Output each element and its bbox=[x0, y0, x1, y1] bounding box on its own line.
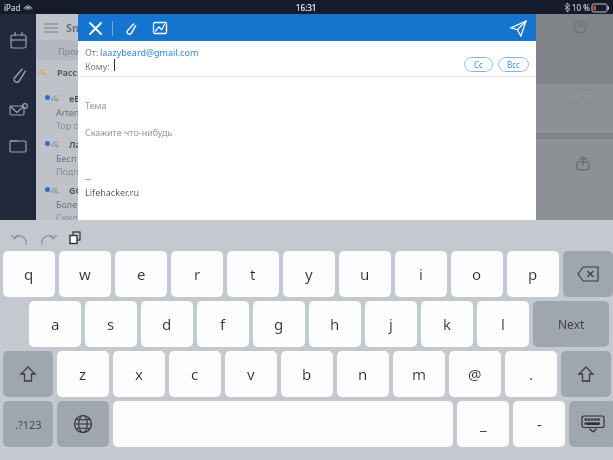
staticText: f bbox=[220, 314, 226, 334]
button[interactable]: Next bbox=[533, 301, 609, 347]
staticText: eB bbox=[69, 92, 81, 104]
staticText: c bbox=[191, 364, 199, 384]
button[interactable]: Hide keyboard bbox=[569, 401, 613, 447]
staticText: o bbox=[472, 264, 482, 284]
button[interactable]: k bbox=[421, 301, 473, 347]
staticText: iPad bbox=[4, 2, 21, 13]
staticText: Sm bbox=[66, 20, 83, 35]
button[interactable]: Close bbox=[84, 17, 106, 39]
staticText: l bbox=[501, 314, 505, 334]
staticText: GO bbox=[69, 184, 83, 196]
button[interactable]: .?123 bbox=[3, 401, 53, 447]
button[interactable]: n bbox=[337, 351, 389, 397]
staticText: a bbox=[51, 314, 60, 334]
staticText: t bbox=[250, 264, 256, 284]
button[interactable]: p bbox=[507, 251, 559, 297]
button[interactable]: GO bbox=[36, 182, 226, 226]
staticText: Бесп bbox=[56, 152, 77, 164]
button[interactable]: Insert photo bbox=[149, 17, 171, 39]
staticText: r bbox=[194, 264, 201, 284]
staticText: x bbox=[135, 364, 143, 384]
staticText: Тема bbox=[85, 99, 107, 111]
button[interactable]: Redo bbox=[38, 228, 58, 248]
button[interactable]: Shift bbox=[3, 351, 53, 397]
button[interactable]: Cc bbox=[464, 57, 493, 72]
staticText: От: bbox=[85, 46, 99, 58]
button[interactable]: Folders bbox=[10, 138, 27, 155]
button[interactable]: Backspace bbox=[563, 251, 613, 297]
button[interactable]: w bbox=[59, 251, 111, 297]
button[interactable]: Menu bbox=[44, 20, 58, 34]
button[interactable]: l bbox=[477, 301, 529, 347]
button[interactable]: Change keyboard bbox=[57, 401, 109, 447]
button[interactable]: t bbox=[227, 251, 279, 297]
button[interactable]: Paste bbox=[66, 228, 86, 248]
button[interactable]: s bbox=[85, 301, 137, 347]
button[interactable]: eB bbox=[36, 90, 226, 134]
button[interactable]: o bbox=[451, 251, 503, 297]
button[interactable]: i bbox=[395, 251, 447, 297]
staticText: h bbox=[330, 314, 340, 334]
staticText: . bbox=[529, 364, 534, 384]
button[interactable]: Ла bbox=[36, 136, 226, 180]
staticText: Скид bbox=[56, 211, 78, 223]
button[interactable]: Undo bbox=[10, 228, 30, 248]
staticText: i bbox=[419, 264, 423, 284]
staticText: j bbox=[389, 314, 393, 334]
button[interactable]: r bbox=[171, 251, 223, 297]
staticText: p bbox=[528, 264, 538, 284]
button[interactable]: b bbox=[281, 351, 333, 397]
staticText: k bbox=[443, 314, 452, 334]
button[interactable]: m bbox=[393, 351, 445, 397]
button[interactable]: v bbox=[225, 351, 277, 397]
staticText: Ла bbox=[69, 138, 81, 150]
button[interactable]: g bbox=[253, 301, 305, 347]
staticText: - bbox=[537, 414, 542, 434]
button[interactable]: _ bbox=[457, 401, 509, 447]
staticText: n bbox=[358, 364, 368, 384]
button[interactable]: a bbox=[29, 301, 81, 347]
button[interactable]: h bbox=[309, 301, 361, 347]
staticText: z bbox=[79, 364, 87, 384]
button[interactable]: q bbox=[3, 251, 55, 297]
button[interactable]: f bbox=[197, 301, 249, 347]
button[interactable]: Share bbox=[576, 156, 590, 170]
staticText: 10 % bbox=[572, 2, 590, 13]
staticText: u bbox=[360, 264, 370, 284]
button[interactable]: d bbox=[141, 301, 193, 347]
button[interactable]: Shift bbox=[561, 351, 611, 397]
button[interactable]: u bbox=[339, 251, 391, 297]
button[interactable]: x bbox=[113, 351, 165, 397]
staticText: d bbox=[162, 314, 172, 334]
button[interactable]: Mail bbox=[10, 102, 27, 119]
staticText: b bbox=[302, 364, 312, 384]
button[interactable]: Attachments bbox=[10, 66, 27, 83]
staticText: .?123 bbox=[15, 417, 42, 432]
staticText: w bbox=[79, 264, 91, 284]
staticText: y bbox=[305, 264, 313, 284]
staticText: q bbox=[24, 264, 34, 284]
button[interactable]: Bcc bbox=[498, 57, 529, 72]
button[interactable]: c bbox=[169, 351, 221, 397]
staticText: m bbox=[412, 364, 427, 384]
button[interactable]: . bbox=[505, 351, 557, 397]
staticText: s bbox=[107, 314, 115, 334]
button[interactable]: y bbox=[283, 251, 335, 297]
staticText: Lifehacker.ru bbox=[85, 186, 139, 198]
staticText: @ bbox=[468, 364, 482, 384]
button[interactable]: Send bbox=[506, 16, 530, 40]
staticText: Cc bbox=[474, 59, 483, 70]
button[interactable]: Attach file bbox=[119, 17, 141, 39]
button[interactable]: Calendar bbox=[10, 32, 27, 49]
staticText: Кому: bbox=[85, 60, 110, 72]
button[interactable]: - bbox=[513, 401, 565, 447]
button[interactable]: Recent bbox=[573, 20, 587, 34]
button[interactable]: j bbox=[365, 301, 417, 347]
staticText: Пров bbox=[58, 45, 81, 57]
button[interactable]: @ bbox=[449, 351, 501, 397]
button[interactable]: z bbox=[57, 351, 109, 397]
staticText: v bbox=[247, 364, 255, 384]
button[interactable]: e bbox=[115, 251, 167, 297]
